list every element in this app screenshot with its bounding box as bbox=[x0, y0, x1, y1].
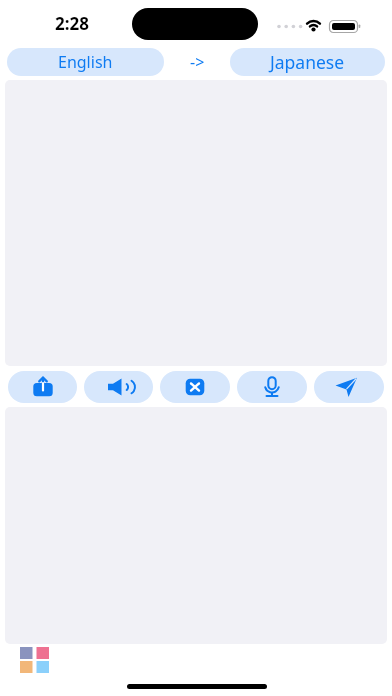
staticText: -> bbox=[190, 51, 205, 73]
button[interactable] bbox=[237, 371, 307, 403]
button[interactable]: English bbox=[7, 48, 164, 76]
staticText: English bbox=[58, 51, 113, 73]
button[interactable] bbox=[160, 371, 230, 403]
button[interactable] bbox=[84, 371, 153, 403]
button[interactable] bbox=[8, 371, 77, 403]
staticText: Japanese bbox=[270, 50, 345, 74]
button[interactable] bbox=[314, 371, 384, 403]
staticText: 2:28 bbox=[55, 12, 89, 35]
button[interactable]: Japanese bbox=[230, 48, 385, 76]
